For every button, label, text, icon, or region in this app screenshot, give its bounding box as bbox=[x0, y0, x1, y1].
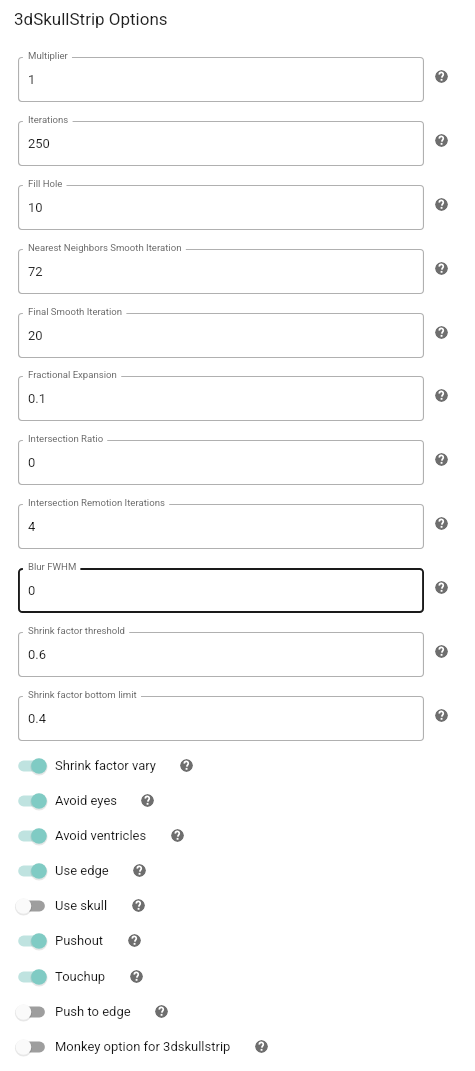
button[interactable]: 0.6 bbox=[18, 632, 424, 677]
button[interactable]: 0.4 bbox=[18, 696, 424, 741]
button[interactable]: 0 bbox=[18, 568, 424, 613]
staticText: 0.6 bbox=[28, 647, 47, 662]
button[interactable]: 10 bbox=[18, 185, 424, 230]
button[interactable]: Help about Pushout bbox=[128, 934, 141, 947]
button[interactable]: Help about Fill Hole bbox=[435, 198, 448, 211]
button[interactable]: Use edge, on bbox=[0, 853, 475, 888]
staticText: 4 bbox=[28, 519, 36, 534]
staticText: Touchup bbox=[55, 969, 106, 984]
staticText: Avoid ventricles bbox=[55, 828, 147, 843]
staticText: 72 bbox=[28, 264, 43, 279]
button[interactable]: Help about Push to edge bbox=[155, 1005, 168, 1018]
staticText: 250 bbox=[28, 136, 50, 151]
button[interactable]: Help about Shrink factor threshold bbox=[435, 645, 448, 658]
button[interactable]: Help about Monkey option for 3dskullstri… bbox=[255, 1040, 268, 1053]
button[interactable]: Use skull, off bbox=[0, 888, 475, 923]
staticText: Use edge bbox=[55, 863, 109, 878]
button[interactable]: Help about Shrink factor bottom limit bbox=[435, 709, 448, 722]
staticText: Fractional Expansion bbox=[28, 369, 117, 380]
staticText: Intersection Remotion Iterations bbox=[28, 497, 165, 508]
staticText: Iterations bbox=[28, 114, 69, 125]
button[interactable]: Shrink factor vary, on bbox=[0, 748, 475, 783]
staticText: Push to edge bbox=[55, 1004, 131, 1019]
button[interactable]: 20 bbox=[18, 313, 424, 358]
button[interactable]: 1 bbox=[18, 57, 424, 102]
staticText: 20 bbox=[28, 328, 43, 343]
button[interactable]: Help about Fractional Expansion bbox=[435, 389, 448, 402]
button[interactable]: Monkey option for 3dskullstrip, off bbox=[0, 1029, 475, 1064]
button[interactable]: 4 bbox=[18, 504, 424, 549]
button[interactable]: Help about Avoid eyes bbox=[141, 794, 154, 807]
button[interactable]: Help about Shrink factor vary bbox=[180, 759, 193, 772]
staticText: Intersection Ratio bbox=[28, 433, 104, 444]
button[interactable]: Help about Nearest Neighbors Smooth Iter… bbox=[435, 262, 448, 275]
button[interactable]: Help about Use skull bbox=[132, 899, 145, 912]
staticText: Final Smooth Iteration bbox=[28, 306, 123, 317]
button[interactable]: 250 bbox=[18, 121, 424, 166]
button[interactable]: Help about Touchup bbox=[130, 970, 143, 983]
staticText: Pushout bbox=[55, 933, 104, 948]
staticText: Shrink factor bottom limit bbox=[28, 689, 137, 700]
button[interactable]: Help about Avoid ventricles bbox=[171, 829, 184, 842]
button[interactable]: Help about Use edge bbox=[133, 864, 146, 877]
staticText: 10 bbox=[28, 200, 43, 215]
staticText: Monkey option for 3dskullstrip bbox=[55, 1039, 231, 1054]
staticText: 3dSkullStrip Options bbox=[14, 9, 168, 29]
button[interactable]: Help about Final Smooth Iteration bbox=[435, 326, 448, 339]
staticText: Multiplier bbox=[28, 50, 68, 61]
staticText: Shrink factor vary bbox=[55, 758, 156, 773]
staticText: Fill Hole bbox=[28, 178, 63, 189]
staticText: 0 bbox=[28, 583, 36, 598]
staticText: Shrink factor threshold bbox=[28, 625, 125, 636]
staticText: Use skull bbox=[55, 898, 108, 913]
button[interactable]: 0.1 bbox=[18, 376, 424, 421]
button[interactable]: Pushout, on bbox=[0, 923, 475, 958]
staticText: 1 bbox=[28, 72, 36, 87]
staticText: Nearest Neighbors Smooth Iteration bbox=[28, 242, 182, 253]
staticText: Blur FWHM bbox=[28, 561, 77, 572]
button[interactable]: Help about Intersection Remotion Iterati… bbox=[435, 517, 448, 530]
button[interactable]: Touchup, on bbox=[0, 959, 475, 994]
staticText: 0 bbox=[28, 455, 36, 470]
button[interactable]: Avoid ventricles, on bbox=[0, 818, 475, 853]
button[interactable]: Push to edge, off bbox=[0, 994, 475, 1029]
staticText: 0.4 bbox=[28, 711, 47, 726]
button[interactable]: Help about Multiplier bbox=[435, 70, 448, 83]
button[interactable]: Avoid eyes, on bbox=[0, 783, 475, 818]
button[interactable]: Help about Blur FWHM bbox=[435, 581, 448, 594]
staticText: 0.1 bbox=[28, 391, 47, 406]
staticText: Avoid eyes bbox=[55, 793, 117, 808]
button[interactable]: 0 bbox=[18, 440, 424, 485]
button[interactable]: Help about Iterations bbox=[435, 134, 448, 147]
button[interactable]: Help about Intersection Ratio bbox=[435, 453, 448, 466]
button[interactable]: 72 bbox=[18, 249, 424, 294]
